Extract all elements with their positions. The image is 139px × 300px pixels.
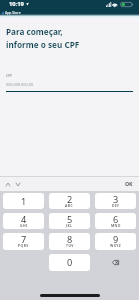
button[interactable]: 3 (95, 193, 136, 209)
staticText: App Store (5, 10, 21, 15)
button[interactable]: Previous field (4, 177, 11, 191)
staticText: 1 (21, 195, 27, 208)
button[interactable]: 7 (3, 233, 44, 250)
staticText: Para começar, (6, 26, 63, 37)
staticText: CPF (6, 73, 13, 78)
button[interactable]: 8 (49, 233, 90, 250)
staticText: DEF (112, 203, 120, 208)
button[interactable]: 9 (95, 233, 136, 250)
staticText: 3 (113, 193, 119, 206)
button[interactable]: OK (125, 180, 133, 187)
button[interactable]: 4 (3, 213, 44, 229)
staticText: 4 (21, 213, 27, 226)
staticText: GHI (20, 223, 28, 228)
staticText: 8 (67, 233, 73, 246)
staticText: ABC (65, 203, 74, 208)
button[interactable]: 0 (49, 254, 90, 271)
button[interactable]: 1 (3, 193, 44, 209)
button[interactable]: 6 (95, 213, 136, 229)
staticText: WXYZ (110, 243, 122, 248)
staticText: 6 (113, 213, 119, 226)
button[interactable]: 2 (49, 193, 90, 209)
staticText: TUV (66, 243, 74, 248)
staticText: 9 (113, 233, 119, 246)
staticText: 7 (21, 233, 27, 246)
staticText: 000.000.000-00 (6, 82, 34, 87)
staticText: 10:19 (9, 0, 24, 8)
button[interactable]: Next field (14, 177, 21, 191)
staticText: JKL (66, 223, 73, 228)
button[interactable]: Backspace (95, 252, 136, 273)
staticText: PQRS (18, 243, 29, 248)
staticText: 0 (67, 256, 73, 269)
staticText: 2 (67, 193, 73, 206)
staticText: MNO (111, 223, 121, 228)
staticText: 5 (67, 213, 73, 226)
staticText: informe o seu CPF (6, 39, 80, 50)
staticText: OK (125, 180, 133, 187)
button[interactable]: 5 (49, 213, 90, 229)
